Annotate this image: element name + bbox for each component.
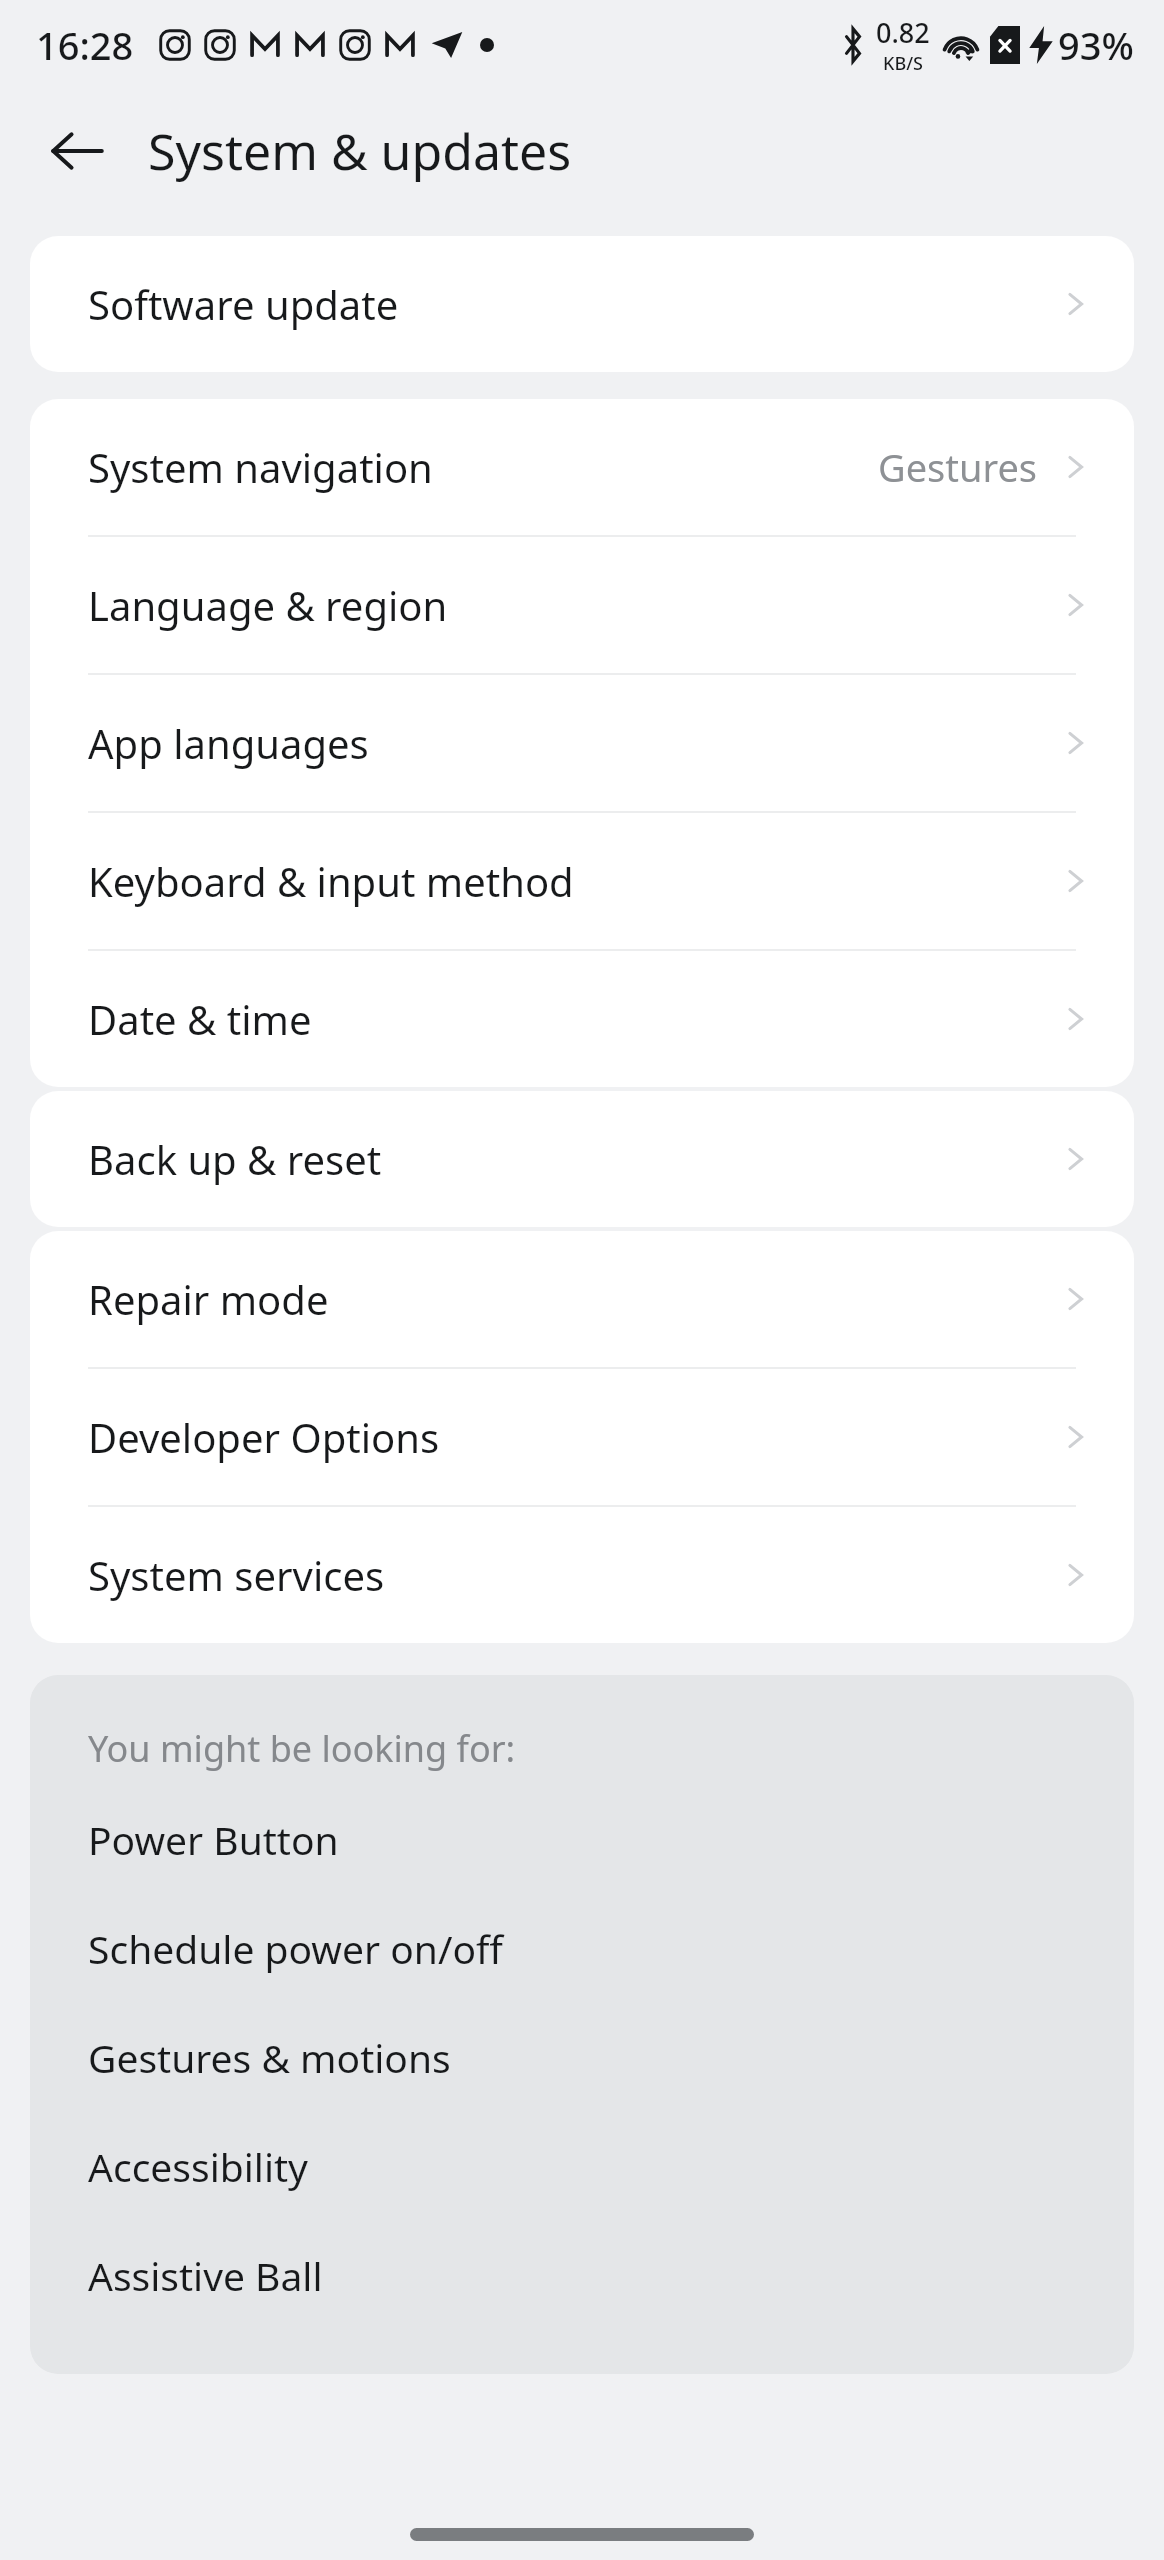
staticText: System services — [88, 1548, 385, 1602]
staticText: Gestures — [878, 441, 1038, 493]
button[interactable]: Assistive Ball — [30, 2221, 1134, 2330]
staticText: Repair mode — [88, 1272, 329, 1326]
button[interactable]: Schedule power on/off — [30, 1894, 1134, 2003]
staticText: Accessibility — [88, 2140, 308, 2193]
button[interactable]: Repair mode — [30, 1231, 1134, 1367]
staticText: Keyboard & input method — [88, 854, 574, 908]
button[interactable]: System services — [30, 1507, 1134, 1643]
staticText: Software update — [88, 277, 399, 331]
button[interactable]: Accessibility — [30, 2112, 1134, 2221]
staticText: Assistive Ball — [88, 2249, 323, 2302]
button[interactable]: App languages — [30, 675, 1134, 811]
staticText: System & updates — [148, 117, 572, 185]
staticText: Power Button — [88, 1813, 339, 1866]
button[interactable]: Power Button — [30, 1785, 1134, 1894]
staticText: 16:28 — [36, 19, 134, 71]
staticText: KB/S — [883, 51, 923, 76]
staticText: Schedule power on/off — [88, 1922, 503, 1975]
button[interactable]: Software update — [30, 236, 1134, 372]
button[interactable]: Developer Options — [30, 1369, 1134, 1505]
button[interactable]: System navigation — [30, 399, 1134, 535]
button[interactable]: Keyboard & input method — [30, 813, 1134, 949]
staticText: 93% — [1058, 19, 1134, 71]
button[interactable]: Back up & reset — [30, 1091, 1134, 1227]
button[interactable]: Date & time — [30, 951, 1134, 1087]
staticText: 0.82 — [876, 14, 930, 51]
button[interactable]: Language & region — [30, 537, 1134, 673]
button[interactable]: Back — [32, 106, 122, 196]
staticText: Gestures & motions — [88, 2031, 451, 2084]
staticText: Developer Options — [88, 1410, 440, 1464]
staticText: Back up & reset — [88, 1132, 382, 1186]
staticText: App languages — [88, 716, 369, 770]
staticText: System navigation — [88, 440, 433, 494]
staticText: Language & region — [88, 578, 448, 632]
staticText: Date & time — [88, 992, 312, 1046]
button[interactable]: Gestures & motions — [30, 2003, 1134, 2112]
staticText: You might be looking for: — [88, 1724, 516, 1773]
